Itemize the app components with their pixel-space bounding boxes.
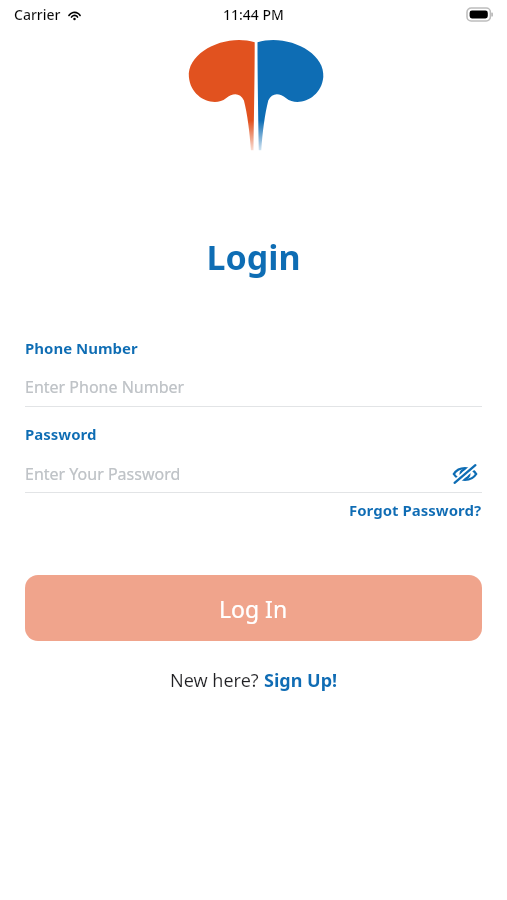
staticText: Enter Your Password xyxy=(25,463,181,485)
staticText: New here? xyxy=(170,668,264,693)
button[interactable]: Enter Your Password xyxy=(25,461,448,487)
button[interactable]: Log In xyxy=(25,575,482,641)
staticText: Phone Number xyxy=(25,338,138,358)
staticText: Carrier xyxy=(14,5,61,24)
staticText: Login xyxy=(0,234,507,280)
button[interactable]: Forgot Password? xyxy=(349,500,482,520)
button[interactable]: Show password xyxy=(448,461,482,487)
staticText: Forgot Password? xyxy=(349,500,482,520)
button[interactable]: Enter Phone Number xyxy=(25,375,482,399)
staticText: Enter Phone Number xyxy=(25,376,185,398)
staticText: Sign Up! xyxy=(264,668,338,693)
staticText: Log In xyxy=(219,593,288,624)
button[interactable]: Sign Up! xyxy=(264,668,338,693)
staticText: 11:44 PM xyxy=(223,5,284,24)
staticText: Password xyxy=(25,424,97,444)
